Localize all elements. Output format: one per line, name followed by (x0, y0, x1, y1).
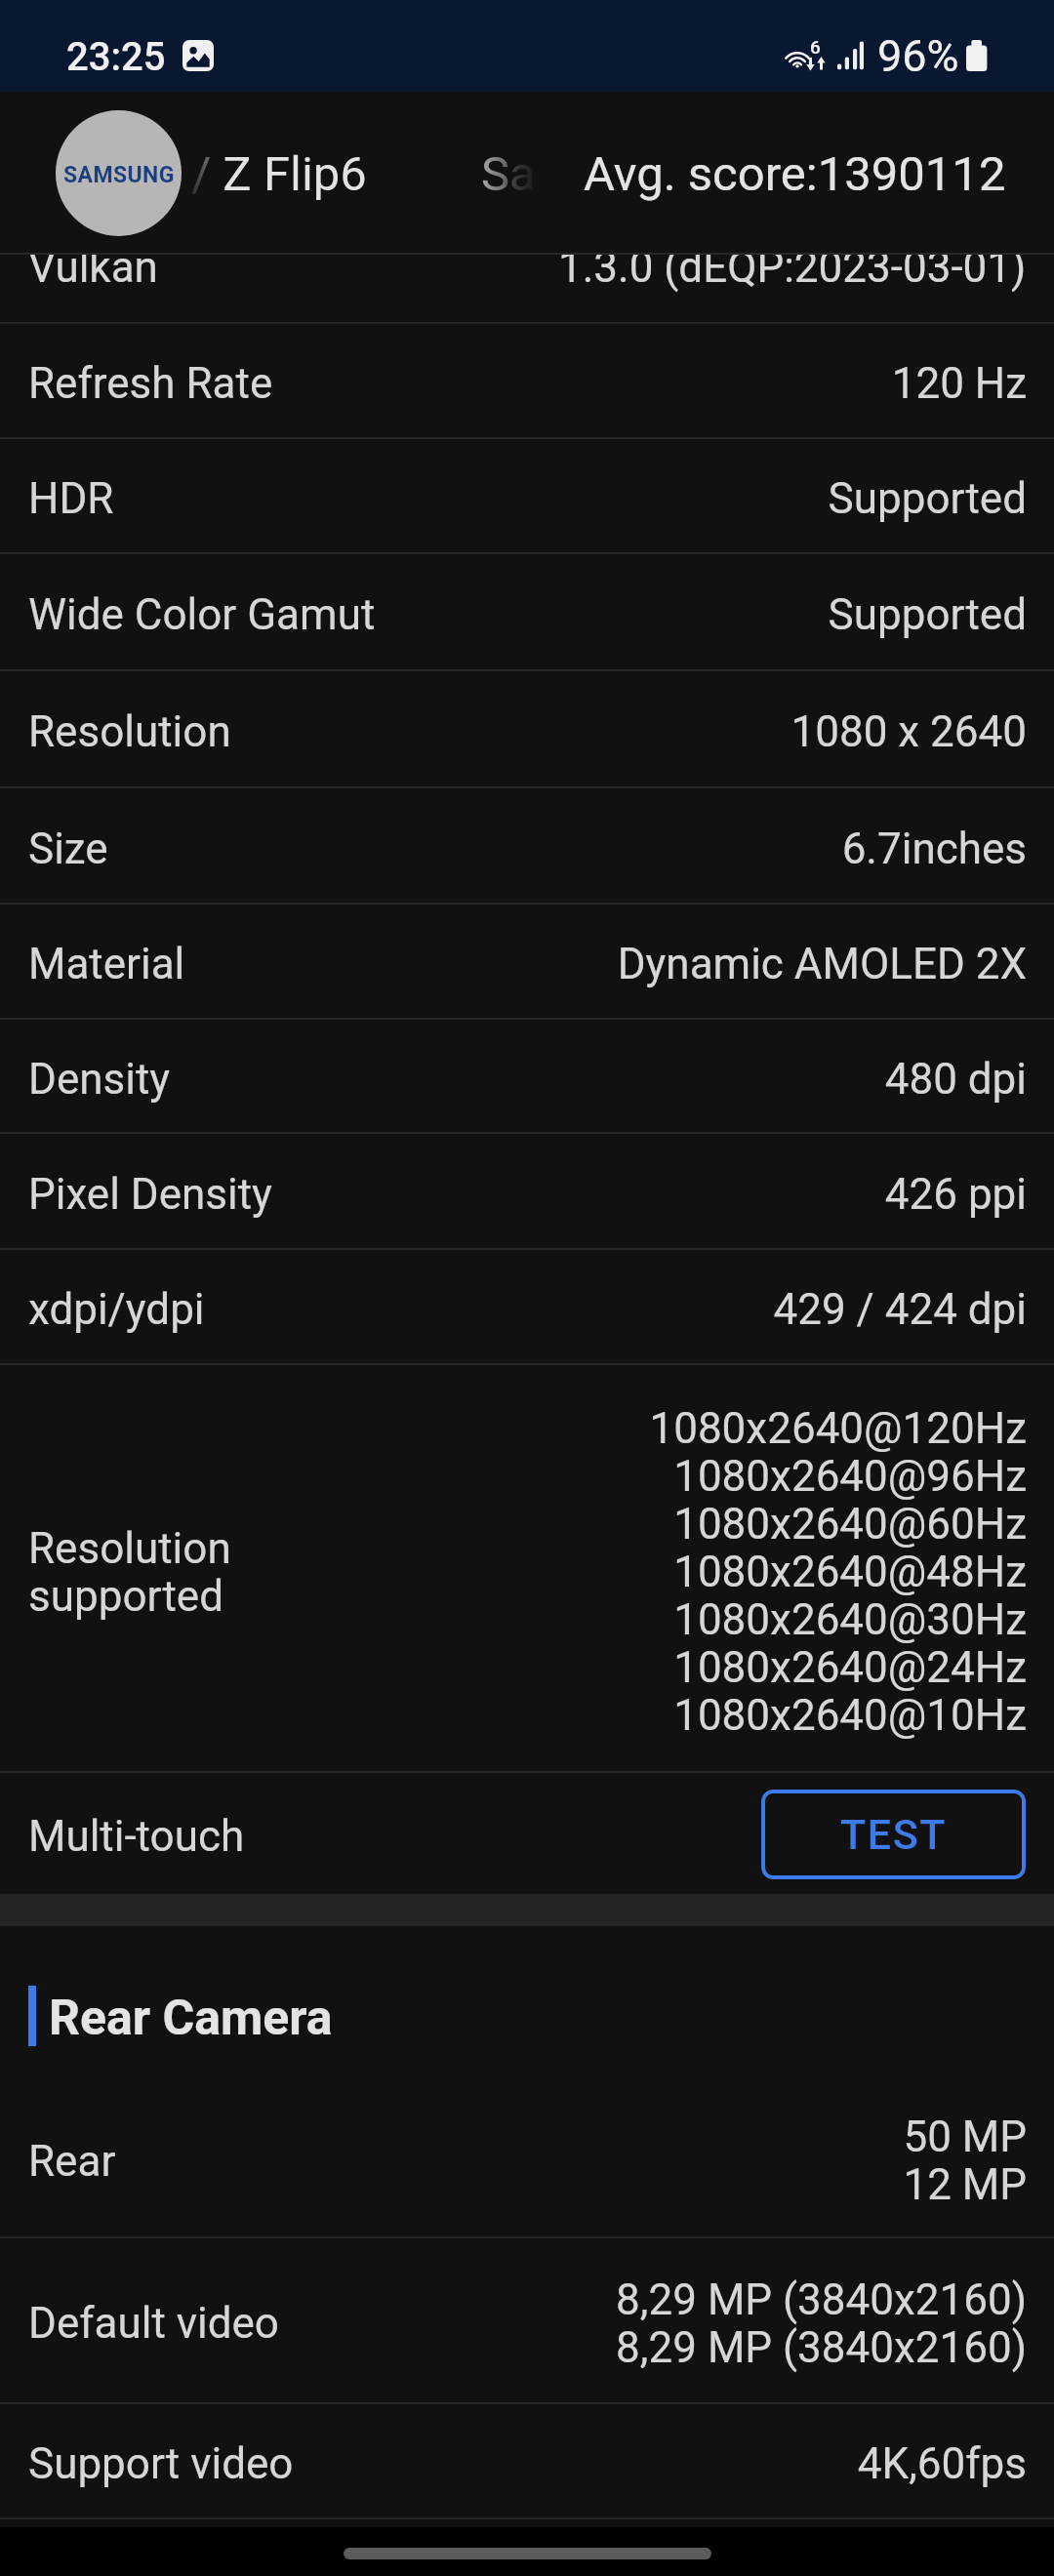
staticText: Support video (28, 2438, 294, 2489)
staticText: 23:25 (66, 34, 166, 80)
button[interactable]: TEST (761, 1790, 1026, 1879)
staticText: Avg. score:1390112 (584, 146, 1006, 202)
button[interactable]: Rear (0, 2079, 1054, 2238)
button[interactable]: Material (0, 905, 1054, 1020)
other: Screenshot (182, 40, 214, 71)
staticText: Resolution supported (28, 1523, 231, 1622)
button[interactable]: Pixel Density (0, 1134, 1054, 1250)
staticText: 1080x2640@120Hz 1080x2640@96Hz 1080x2640… (649, 1403, 1027, 1741)
staticText: 1080 x 2640 (790, 706, 1027, 757)
staticText: xdpi/ydpi (28, 1284, 205, 1335)
staticText: 429 / 424 dpi (773, 1284, 1027, 1335)
staticText: 50 MP 12 MP (903, 2112, 1027, 2210)
staticText: Size (28, 824, 108, 874)
staticText: Rear Camera (49, 1990, 333, 2047)
staticText: 6 (810, 36, 821, 58)
staticText: Rear (28, 2136, 116, 2187)
button[interactable]: Samsung device (56, 110, 182, 236)
staticText: 1.3.0 (dEQP:2023-03-01) (558, 255, 1027, 293)
staticText: Material (28, 939, 185, 989)
button[interactable]: xdpi/ydpi (0, 1250, 1054, 1365)
button[interactable]: / Z Flip6 (0, 92, 1054, 255)
staticText: Supported (828, 473, 1027, 524)
button[interactable]: Support video (0, 2404, 1054, 2519)
staticText: TEST (840, 1810, 948, 1859)
button[interactable]: Refresh Rate (0, 324, 1054, 439)
staticText: Default video (28, 2298, 279, 2349)
staticText: SAMSUNG (63, 162, 175, 188)
button[interactable]: Resolution (0, 671, 1054, 788)
other: Battery (966, 40, 988, 72)
button[interactable]: Default video (0, 2238, 1054, 2404)
button[interactable]: Size (0, 788, 1054, 905)
button[interactable]: HDR (0, 439, 1054, 554)
button[interactable]: Home (0, 2527, 1054, 2576)
staticText: 480 dpi (884, 1054, 1027, 1105)
staticText: 8,29 MP (3840x2160) 8,29 MP (3840x2160) (616, 2274, 1027, 2373)
staticText: / Z Flip6 (191, 146, 367, 202)
staticText: HDR (28, 473, 114, 524)
staticText: 6.7inches (841, 824, 1027, 874)
button[interactable]: Multi-touch (0, 1773, 1054, 1894)
staticText: Vulkan (28, 255, 158, 293)
button[interactable]: Wide Color Gamut (0, 554, 1054, 671)
staticText: 120 Hz (891, 358, 1027, 409)
staticText: Wide Color Gamut (28, 589, 376, 640)
staticText: 96% (877, 30, 959, 82)
button[interactable]: Resolution supported (0, 1365, 1054, 1773)
staticText: 426 ppi (884, 1169, 1027, 1220)
staticText: Refresh Rate (28, 358, 273, 409)
staticText: 4K,60fps (857, 2438, 1027, 2489)
button[interactable]: Density (0, 1020, 1054, 1134)
staticText: Resolution (28, 706, 231, 757)
staticText: Multi-touch (28, 1811, 245, 1862)
button[interactable]: Rear Camera (0, 1926, 1054, 2079)
staticText: Supported (828, 589, 1027, 640)
staticText: Pixel Density (28, 1169, 272, 1220)
button[interactable]: Vulkan (0, 255, 1054, 324)
staticText: Dynamic AMOLED 2X (617, 939, 1027, 989)
staticText: Density (28, 1054, 171, 1105)
staticText: Sa (481, 146, 536, 202)
